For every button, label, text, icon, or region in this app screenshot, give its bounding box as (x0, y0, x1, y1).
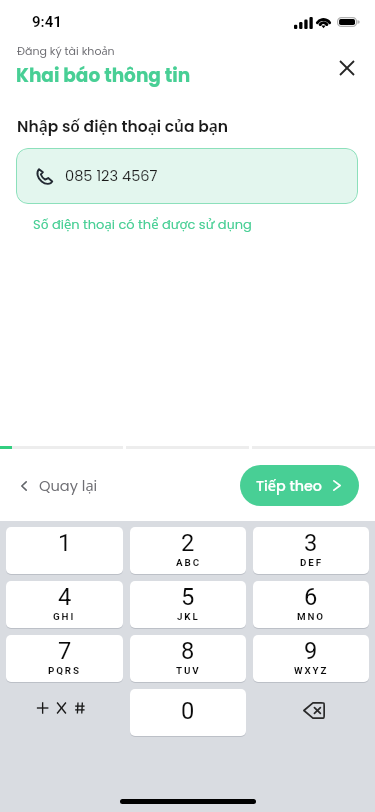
staticText: 8 (181, 637, 195, 665)
staticText: 3 (304, 529, 318, 557)
button[interactable]: Quay lại (12, 466, 107, 505)
staticText: TUV (176, 665, 201, 676)
staticText: Tiếp theo (256, 476, 322, 496)
button[interactable]: 3 (253, 527, 369, 574)
button[interactable]: 5 (130, 581, 246, 628)
button[interactable]: Backspace (253, 689, 369, 736)
staticText: 9:41 (32, 13, 62, 31)
button[interactable]: 8 (130, 635, 246, 682)
button[interactable]: 9 (253, 635, 369, 682)
button[interactable]: Symbols (6, 689, 123, 736)
staticText: GHI (53, 611, 76, 622)
staticText: 7 (58, 637, 72, 665)
button[interactable]: 1 (6, 527, 123, 574)
button[interactable]: 4 (6, 581, 123, 628)
staticText: WXYZ (294, 665, 329, 676)
staticText: 9 (304, 637, 318, 665)
staticText: JKL (177, 611, 200, 622)
staticText: 085 123 4567 (65, 166, 158, 186)
button[interactable]: 085 123 4567 (16, 148, 358, 204)
staticText: 4 (58, 583, 72, 611)
staticText: 0 (181, 697, 195, 725)
staticText: DEF (300, 557, 323, 568)
staticText: Quay lại (39, 475, 98, 496)
staticText: Đăng ký tài khoản (17, 43, 115, 59)
staticText: ABC (176, 557, 201, 568)
staticText: 1 (58, 529, 72, 557)
staticText: 2 (181, 529, 195, 557)
button[interactable]: 7 (6, 635, 123, 682)
button[interactable]: Close (325, 46, 368, 89)
staticText: 6 (304, 583, 318, 611)
button[interactable]: 0 (130, 689, 246, 736)
button[interactable]: 6 (253, 581, 369, 628)
button[interactable]: Tiếp theo (240, 465, 359, 506)
button[interactable]: 2 (130, 527, 246, 574)
staticText: Số điện thoại có thể được sử dụng (33, 215, 252, 233)
staticText: Khai báo thông tin (16, 63, 191, 89)
staticText: Nhập số điện thoại của bạn (17, 115, 228, 137)
staticText: PQRS (48, 665, 81, 676)
staticText: 5 (181, 583, 195, 611)
staticText: MNO (297, 611, 325, 622)
